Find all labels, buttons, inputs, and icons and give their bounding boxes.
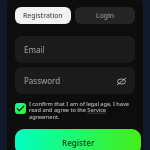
staticText: Login — [96, 11, 115, 20]
button[interactable]: Email — [15, 36, 135, 63]
button[interactable]: Show password — [115, 75, 128, 88]
staticText: I confirm that I am of legal age, I have… — [29, 100, 135, 121]
button[interactable]: I confirm that I am of legal age, I have… — [15, 102, 135, 126]
staticText: Email — [24, 44, 45, 55]
button[interactable]: Register — [15, 129, 141, 150]
staticText: Registration — [23, 11, 63, 20]
button[interactable]: Registration — [15, 7, 71, 24]
button[interactable]: Password — [15, 67, 135, 94]
staticText: Register — [62, 137, 95, 148]
button[interactable]: Login — [75, 7, 135, 24]
staticText: Password — [24, 75, 61, 86]
